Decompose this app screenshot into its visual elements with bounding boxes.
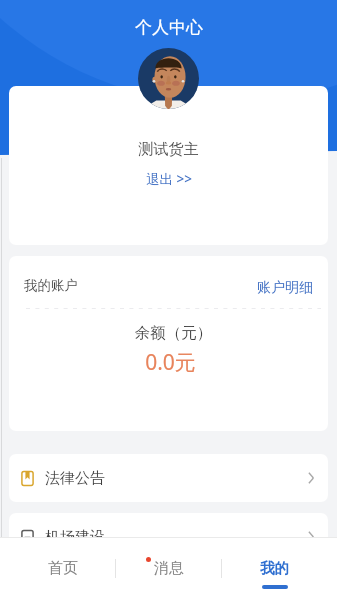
staticText: 退出 >> xyxy=(146,170,192,188)
button[interactable]: 我的 xyxy=(222,537,327,600)
staticText: 个人中心 xyxy=(135,17,203,38)
staticText: 首页 xyxy=(48,559,78,578)
button[interactable]: 机场建设 xyxy=(9,513,328,561)
staticText: 0.0元 xyxy=(11,348,328,377)
staticText: 测试货主 xyxy=(9,140,328,159)
button[interactable]: 退出 >> xyxy=(142,168,196,190)
staticText: 余额（元） xyxy=(14,323,328,343)
button[interactable]: 法律公告 xyxy=(9,454,328,502)
staticText: 我的 xyxy=(260,559,289,577)
staticText: 法律公告 xyxy=(45,469,105,488)
button[interactable]: 首页 xyxy=(10,537,115,600)
staticText: 机场建设 xyxy=(45,528,105,547)
button[interactable]: 账户明细 xyxy=(257,276,313,294)
button[interactable]: 消息 xyxy=(116,537,221,600)
staticText: 我的账户 xyxy=(24,277,78,294)
staticText: 消息 xyxy=(154,559,184,578)
staticText: 账户明细 xyxy=(257,279,313,297)
